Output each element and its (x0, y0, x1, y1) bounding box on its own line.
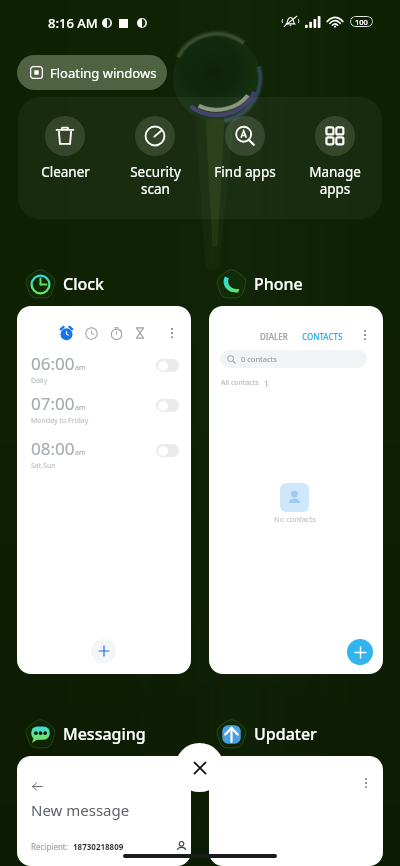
staticText: Security scan (130, 163, 181, 198)
button[interactable]: Back (17, 756, 191, 866)
button[interactable]: Find apps (202, 116, 288, 181)
button[interactable]: CONTACTS (299, 328, 346, 345)
staticText: New message (31, 800, 130, 820)
button[interactable]: Back (29, 778, 45, 794)
staticText: No contacts (274, 514, 316, 524)
staticText: 08:00 (31, 437, 75, 460)
staticText: Messaging (63, 723, 146, 745)
staticText: Updater (254, 723, 317, 745)
button[interactable]: More options (359, 776, 372, 789)
staticText: 0 contacts (241, 354, 277, 364)
button[interactable]: All contacts (221, 376, 270, 390)
button[interactable]: Toggle alarm (156, 399, 179, 412)
staticText: Daily (31, 376, 48, 386)
button[interactable]: More options (165, 326, 179, 340)
button[interactable]: Toggle alarm (156, 359, 179, 372)
staticText: 8:16 AM (48, 14, 98, 32)
staticText: Find apps (214, 163, 276, 181)
staticText: Sat Sun (31, 461, 56, 471)
button[interactable]: Alarm (58, 325, 74, 341)
button[interactable]: Messaging (20, 714, 146, 754)
staticText: All contacts (221, 378, 259, 388)
staticText: Monday to Friday (31, 416, 89, 426)
button[interactable]: Alarm (17, 306, 191, 674)
button[interactable]: More options (209, 756, 383, 866)
button[interactable]: DIALER (257, 328, 291, 345)
button[interactable]: Stopwatch (109, 326, 123, 340)
button[interactable]: Cleaner (22, 116, 108, 181)
button[interactable]: 0 contacts (220, 350, 367, 368)
staticText: am (75, 448, 86, 458)
staticText: am (75, 403, 86, 413)
button[interactable]: World clock (84, 326, 98, 340)
button[interactable]: Close all (175, 743, 224, 792)
staticText: 100 (355, 17, 368, 27)
staticText: 18730218809 (73, 841, 124, 852)
button[interactable]: Add alarm (91, 639, 116, 663)
button[interactable]: Toggle alarm (156, 444, 179, 457)
button[interactable]: Updater (211, 714, 317, 754)
button[interactable]: DIALER (209, 306, 383, 674)
staticText: am (75, 363, 86, 373)
staticText: Floating windows (50, 64, 157, 82)
staticText: Clock (63, 273, 105, 295)
button[interactable]: Clock (20, 264, 105, 304)
staticText: CONTACTS (302, 331, 343, 342)
staticText: 06:00 (31, 352, 75, 375)
staticText: Recipient: (31, 841, 68, 852)
staticText: 07:00 (31, 392, 75, 415)
button[interactable]: Security scan (112, 116, 198, 198)
staticText: DIALER (260, 331, 288, 342)
staticText: Cleaner (41, 163, 90, 181)
button[interactable]: Manage apps (292, 116, 378, 198)
staticText: Manage apps (309, 163, 361, 198)
button[interactable]: Floating windows (17, 55, 167, 90)
button[interactable]: Timer (133, 326, 147, 340)
staticText: Phone (254, 273, 303, 295)
button[interactable]: Choose contact (175, 840, 188, 853)
button[interactable]: 06:00 (31, 352, 179, 386)
button[interactable]: 08:00 (31, 437, 179, 471)
button[interactable]: Add contact (347, 639, 373, 665)
button[interactable]: 07:00 (31, 392, 179, 426)
button[interactable]: Phone (211, 264, 303, 304)
button[interactable]: More options (358, 328, 371, 341)
